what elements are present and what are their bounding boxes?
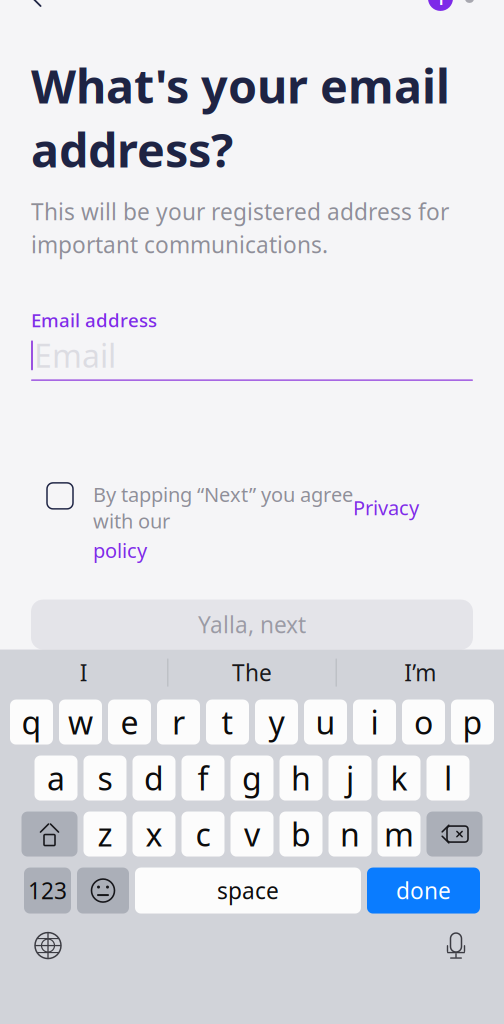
staticText: n [340,813,360,855]
staticText: The [232,657,272,688]
staticText: o [414,701,433,743]
staticText: p [462,701,482,743]
button[interactable]: Emoji [77,868,129,914]
button[interactable]: q [10,700,53,745]
staticText: h [291,757,311,799]
staticText: 1 [435,0,445,10]
staticText: y [268,701,284,743]
button[interactable]: Dictate [434,926,478,966]
staticText: u [315,701,335,743]
staticText: z [97,813,112,855]
button[interactable]: i [353,700,396,745]
button[interactable]: k [377,756,420,801]
button[interactable]: w [59,700,102,745]
staticText: Privacy [353,494,419,521]
staticText: important communications. [31,229,328,260]
button[interactable]: By tapping “Next” you agree with our [31,481,473,564]
button[interactable]: j [328,756,371,801]
button[interactable]: v [230,812,273,857]
staticText: Email [34,334,116,377]
staticText: t [221,701,233,743]
staticText: l [444,757,452,799]
button[interactable]: z [83,812,126,857]
button[interactable]: s [83,756,126,801]
staticText: f [197,757,208,799]
staticText: c [195,813,210,855]
button[interactable]: u [304,700,347,745]
staticText: s [97,757,112,799]
staticText: space [217,875,279,906]
staticText: 123 [28,875,67,906]
button[interactable]: f [181,756,224,801]
button[interactable]: Next keyboard [26,926,70,966]
button[interactable]: y [255,700,298,745]
staticText: Yalla, next [198,609,306,640]
button[interactable]: x [132,812,175,857]
button[interactable]: space [135,868,361,914]
staticText: By tapping “Next” you agree with our [93,481,353,534]
button[interactable]: Yalla, next [31,600,473,650]
button[interactable]: m [377,812,420,857]
staticText: v [244,813,260,855]
staticText: b [291,813,311,855]
staticText: I’m [404,657,436,688]
button[interactable]: c [181,812,224,857]
staticText: a [47,757,65,799]
button[interactable]: Delete [426,812,482,857]
button[interactable]: d [132,756,175,801]
button[interactable]: e [108,700,151,745]
staticText: k [390,757,407,799]
staticText: i [370,701,378,743]
button[interactable]: b [279,812,322,857]
staticText: Email address [31,308,157,332]
staticText: address? [31,118,233,180]
staticText: j [346,757,354,799]
button[interactable]: Back [24,0,68,20]
button[interactable]: t [206,700,249,745]
button[interactable]: The [168,650,336,696]
staticText: What's your email [31,54,450,116]
button[interactable]: g [230,756,273,801]
button[interactable]: r [157,700,200,745]
staticText: d [144,757,164,799]
button[interactable]: p [451,700,494,745]
button[interactable]: I’m [337,650,504,696]
button[interactable]: Shift [21,812,77,857]
button[interactable]: 123 [24,868,71,914]
staticText: w [68,701,93,743]
button[interactable]: h [279,756,322,801]
staticText: e [120,701,138,743]
staticText: g [242,757,262,799]
staticText: done [396,875,451,906]
button[interactable]: I [0,650,167,696]
button[interactable]: a [34,756,77,801]
button[interactable]: done [367,868,480,914]
staticText: I [80,657,88,688]
button[interactable]: n [328,812,371,857]
staticText: r [172,701,185,743]
staticText: x [145,813,162,855]
staticText: This will be your registered address for [31,196,449,226]
staticText: m [384,813,414,855]
staticText: q [21,701,41,743]
button[interactable]: l [426,756,469,801]
staticText: policy [93,537,147,564]
button[interactable]: o [402,700,445,745]
